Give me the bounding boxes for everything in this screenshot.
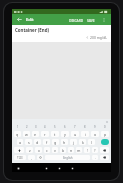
staticText: 5: [54, 125, 56, 129]
staticText: t: [54, 132, 56, 137]
staticText: o: [94, 132, 97, 137]
button[interactable]: 8: [80, 124, 90, 130]
button[interactable]: Emoji: [37, 155, 43, 160]
staticText: m: [77, 148, 81, 153]
button[interactable]: Keyboard settings: [105, 120, 108, 123]
staticText: z: [29, 148, 31, 153]
staticText: 9: [94, 125, 96, 129]
button[interactable]: h: [61, 139, 68, 145]
button[interactable]: 0: [100, 124, 110, 130]
staticText: 2: [26, 125, 28, 129]
button[interactable]: w: [23, 131, 30, 137]
button[interactable]: Back: [43, 165, 49, 171]
button[interactable]: l: [88, 139, 95, 145]
button[interactable]: Container (End): [12, 25, 111, 42]
staticText: y: [64, 132, 66, 137]
staticText: Edit: [26, 17, 34, 23]
staticText: !: [87, 148, 88, 153]
staticText: r: [44, 132, 46, 137]
button[interactable]: 3: [31, 124, 40, 130]
button[interactable]: r: [41, 131, 49, 137]
staticText: 8: [84, 125, 86, 129]
staticText: English: [63, 156, 73, 160]
button[interactable]: Home: [56, 165, 62, 171]
staticText: Container (End): [15, 27, 49, 33]
button[interactable]: 5: [50, 124, 60, 130]
button[interactable]: ?: [92, 147, 98, 153]
button[interactable]: ,: [28, 155, 35, 160]
staticText: 6: [64, 125, 66, 129]
staticText: j: [73, 140, 74, 145]
button[interactable]: u: [71, 131, 79, 137]
button[interactable]: z: [26, 147, 33, 153]
button[interactable]: 7: [70, 124, 80, 130]
staticText: c: [46, 148, 48, 153]
button[interactable]: a: [17, 139, 23, 145]
button[interactable]: Recents: [69, 165, 75, 171]
button[interactable]: q: [14, 131, 21, 137]
button[interactable]: Shift: [14, 147, 24, 153]
button[interactable]: English: [45, 155, 90, 160]
button[interactable]: i: [81, 131, 89, 137]
staticText: v: [54, 148, 56, 153]
button[interactable]: Keyboard layout: [100, 155, 109, 160]
staticText: SAVE: [87, 18, 95, 22]
button[interactable]: 6: [60, 124, 70, 130]
staticText: h: [63, 140, 66, 145]
button[interactable]: j: [70, 139, 77, 145]
staticText: ?123: [17, 156, 23, 160]
button[interactable]: v: [52, 147, 58, 153]
staticText: 0: [104, 125, 106, 129]
button[interactable]: y: [61, 131, 69, 137]
staticText: ?: [94, 148, 96, 153]
staticText: l: [91, 140, 92, 145]
staticText: u: [74, 132, 77, 137]
staticText: p: [104, 132, 107, 137]
button[interactable]: c: [44, 147, 50, 153]
button[interactable]: Back: [15, 15, 24, 24]
staticText: x: [38, 148, 40, 153]
button[interactable]: d: [34, 139, 41, 145]
staticText: DISCARD: [69, 18, 84, 22]
staticText: k: [82, 140, 84, 145]
button[interactable]: k: [79, 139, 86, 145]
button[interactable]: 2: [22, 124, 31, 130]
staticText: e: [34, 132, 37, 137]
button[interactable]: Backspace: [100, 147, 109, 153]
button[interactable]: m: [76, 147, 82, 153]
button[interactable]: s: [25, 139, 32, 145]
staticText: g: [54, 140, 57, 145]
staticText: 3: [35, 125, 37, 129]
button[interactable]: f: [43, 139, 50, 145]
staticText: 4: [44, 125, 46, 129]
button[interactable]: DISCARD: [67, 17, 97, 23]
button[interactable]: 9: [90, 124, 100, 130]
staticText: q: [16, 132, 19, 137]
staticText: n: [70, 148, 73, 153]
button[interactable]: !: [84, 147, 90, 153]
button[interactable]: g: [52, 139, 59, 145]
staticText: a: [19, 140, 22, 145]
button[interactable]: p: [101, 131, 109, 137]
button[interactable]: x: [35, 147, 42, 153]
button[interactable]: Enter: [101, 139, 109, 145]
button[interactable]: o: [91, 131, 99, 137]
staticText: d: [36, 140, 39, 145]
staticText: w: [25, 132, 28, 137]
staticText: 1: [17, 125, 19, 129]
button[interactable]: ?123: [14, 155, 26, 160]
button[interactable]: e: [32, 131, 39, 137]
button[interactable]: .: [92, 155, 98, 160]
button[interactable]: 1: [13, 124, 22, 130]
button[interactable]: t: [51, 131, 59, 137]
staticText: .: [95, 156, 96, 160]
button[interactable]: Menu: [15, 165, 21, 171]
staticText: 7: [74, 125, 76, 129]
button[interactable]: b: [60, 147, 66, 153]
staticText: 200 mg/dL: [90, 35, 108, 40]
button[interactable]: n: [68, 147, 74, 153]
button[interactable]: 4: [40, 124, 50, 130]
button[interactable]: More options: [99, 15, 108, 24]
staticText: s: [28, 140, 30, 145]
staticText: i: [85, 132, 86, 137]
